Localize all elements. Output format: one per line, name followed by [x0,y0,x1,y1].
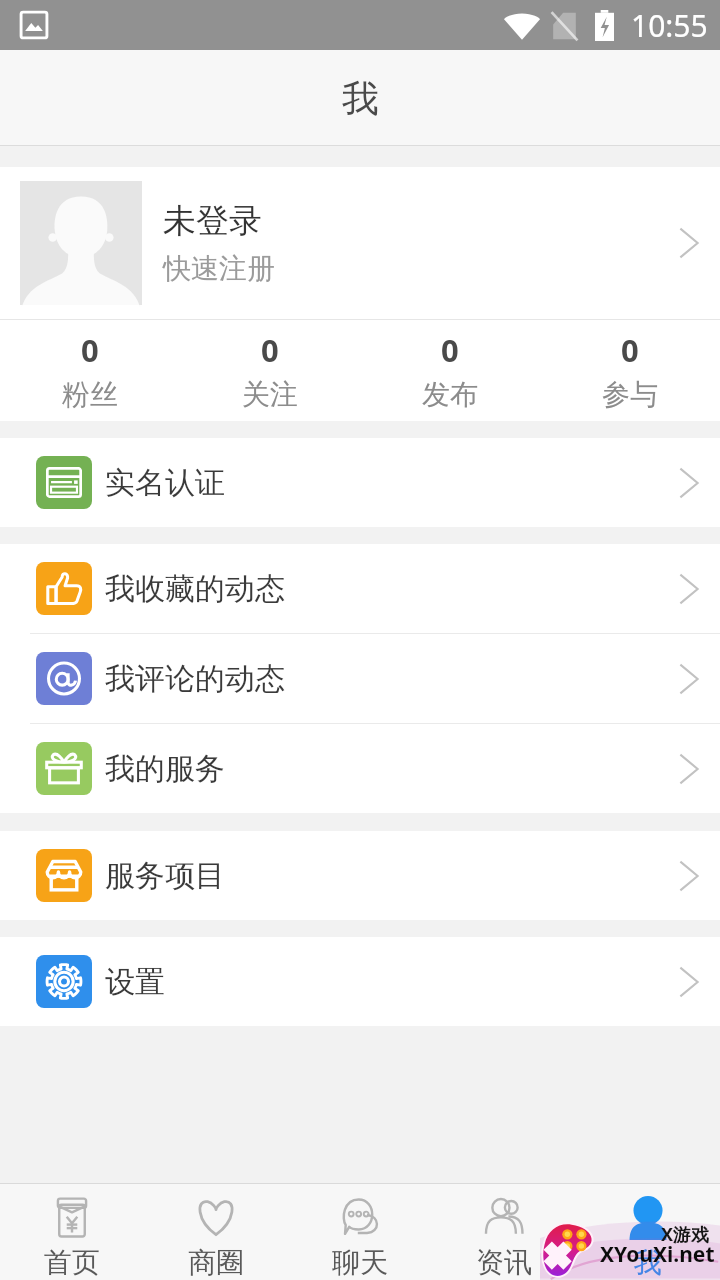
staticText: X游戏 [661,1222,710,1247]
button[interactable]: 未登录 [0,167,720,319]
staticText: 0 [621,329,639,371]
button[interactable]: 我的服务 [0,724,720,813]
staticText: 0 [81,329,99,371]
staticText: 我 [342,75,379,122]
button[interactable]: 资讯 [432,1184,576,1280]
staticText: 0 [441,329,459,371]
button[interactable]: 设置 [0,937,720,1026]
button[interactable]: 0 [360,320,540,421]
staticText: 首页 [44,1245,100,1280]
staticText: 资讯 [476,1245,532,1280]
staticText: 粉丝 [62,377,118,412]
staticText: 参与 [602,377,658,412]
staticText: 我收藏的动态 [105,570,285,608]
staticText: 发布 [422,377,478,412]
staticText: 0 [261,329,279,371]
staticText: 商圈 [188,1245,244,1280]
staticText: 我 [634,1245,662,1280]
staticText: XYouXi.net [600,1240,715,1269]
staticText: 服务项目 [105,857,225,895]
staticText: 我的服务 [105,750,225,788]
button[interactable]: 0 [180,320,360,421]
staticText: 关注 [242,377,298,412]
button[interactable]: 服务项目 [0,831,720,920]
button[interactable]: 聊天 [288,1184,432,1280]
staticText: 实名认证 [105,464,225,502]
staticText: 我评论的动态 [105,660,285,698]
button[interactable]: 0 [540,320,720,421]
staticText: 聊天 [332,1245,388,1280]
button[interactable]: 我评论的动态 [0,634,720,723]
staticText: 快速注册 [163,251,275,286]
button[interactable]: 我 [576,1184,720,1280]
button[interactable]: 实名认证 [0,438,720,527]
button[interactable]: 首页 [0,1184,144,1280]
button[interactable]: 我收藏的动态 [0,544,720,633]
button[interactable]: 0 [0,320,180,421]
staticText: 设置 [105,963,165,1001]
staticText: 10:55 [631,5,708,46]
button[interactable]: 商圈 [144,1184,288,1280]
staticText: 未登录 [163,200,262,242]
